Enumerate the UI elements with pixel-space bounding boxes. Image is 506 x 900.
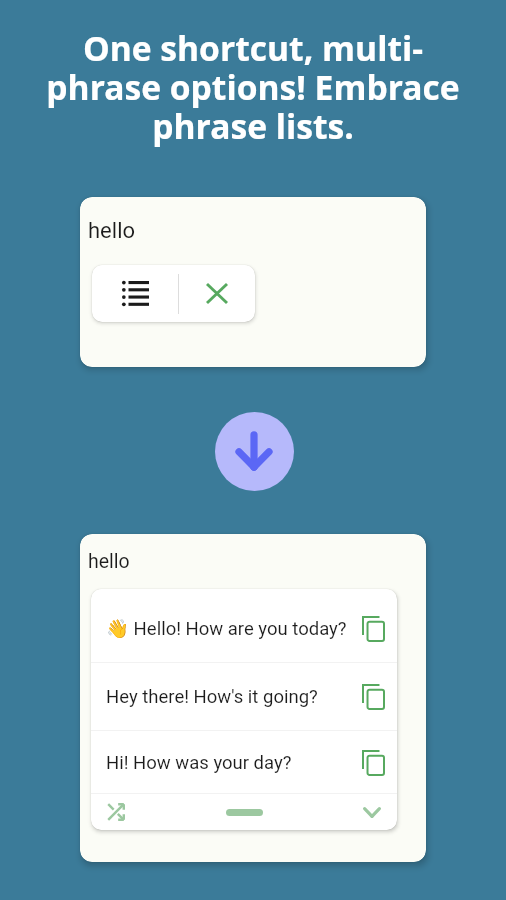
button[interactable]: Shuffle: [91, 794, 141, 830]
button[interactable]: 👋 Hello! How are you today?: [91, 589, 397, 662]
button[interactable]: Copy: [349, 595, 397, 662]
staticText: 👋 Hello! How are you today?: [106, 618, 349, 640]
button[interactable]: Copy: [349, 664, 397, 730]
staticText: hello: [88, 550, 130, 573]
button[interactable]: Expand: [347, 794, 397, 830]
button[interactable]: Hi! How was your day?: [91, 731, 397, 793]
staticText: Hi! How was your day?: [106, 752, 349, 774]
staticText: hello: [88, 218, 136, 244]
button[interactable]: Down arrow: [215, 412, 294, 491]
button[interactable]: Copy: [349, 732, 397, 793]
button[interactable]: Phrase list: [92, 265, 178, 322]
staticText: One shortcut, multi- phrase options! Emb…: [0, 25, 506, 149]
button[interactable]: Hey there! How's it going?: [91, 663, 397, 730]
button[interactable]: Close: [179, 265, 255, 322]
staticText: Hey there! How's it going?: [106, 686, 349, 708]
